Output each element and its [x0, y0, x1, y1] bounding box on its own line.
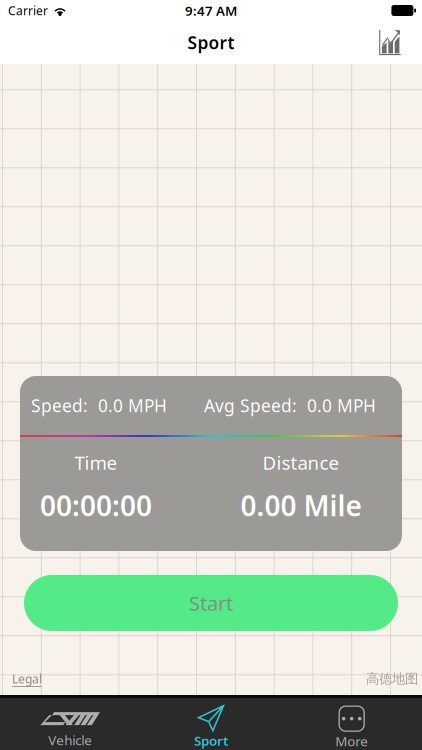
staticText: Legal: [12, 671, 42, 687]
staticText: Speed: 0.0 MPH: [31, 394, 167, 417]
staticText: 0.00 Mile: [240, 487, 361, 524]
staticText: Sport: [187, 31, 234, 54]
staticText: Distance: [262, 450, 339, 475]
staticText: 9:47 AM: [185, 2, 237, 19]
staticText: More: [335, 732, 368, 750]
button[interactable]: Vehicle: [0, 698, 141, 750]
staticText: Carrier: [8, 2, 48, 18]
button[interactable]: Start: [24, 575, 398, 631]
button[interactable]: Statistics: [364, 22, 422, 63]
staticText: Time: [74, 450, 117, 475]
staticText: 00:00:00: [40, 487, 152, 524]
staticText: 高德地图: [366, 671, 418, 687]
button[interactable]: More: [281, 698, 422, 750]
button[interactable]: Sport: [141, 698, 281, 750]
staticText: Start: [189, 590, 233, 616]
staticText: Avg Speed: 0.0 MPH: [204, 394, 376, 417]
staticText: Vehicle: [48, 731, 92, 749]
staticText: Sport: [194, 732, 228, 749]
